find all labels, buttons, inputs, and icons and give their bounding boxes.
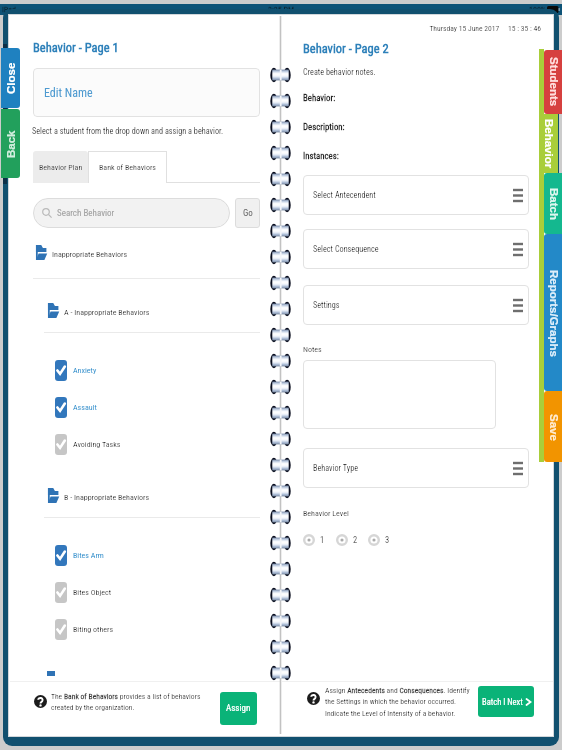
button[interactable]: Bank of Behaviors bbox=[88, 151, 167, 183]
staticText: Select a student from the drop down and … bbox=[32, 126, 224, 136]
staticText: Behavior Type bbox=[313, 463, 513, 473]
staticText: Notes bbox=[303, 345, 322, 354]
staticText: Behavior bbox=[542, 119, 555, 169]
staticText: Behavior - Page 1 bbox=[33, 40, 119, 55]
button[interactable]: Behavior Plan bbox=[33, 151, 88, 183]
staticText: Batch I Next bbox=[482, 697, 523, 707]
button[interactable]: 2 bbox=[336, 534, 358, 546]
staticText: 2 bbox=[353, 535, 358, 545]
staticText: 100% bbox=[529, 5, 546, 14]
button[interactable]: Go bbox=[235, 198, 260, 228]
staticText: Assault bbox=[73, 403, 97, 412]
staticText: Close bbox=[5, 62, 18, 94]
button[interactable]: Inappropriate Behaviors bbox=[35, 245, 128, 260]
button[interactable]: Edit Name bbox=[33, 68, 260, 117]
staticText: Bank of Behaviors bbox=[99, 163, 157, 172]
staticText: Behavior: bbox=[303, 93, 336, 103]
button[interactable]: 1 bbox=[303, 534, 325, 546]
staticText: 1 bbox=[320, 535, 325, 545]
staticText: B - Inappropriate Behaviors bbox=[64, 493, 150, 502]
button[interactable]: Bites Arm bbox=[55, 545, 104, 566]
button[interactable]: Select Antecendent bbox=[303, 175, 529, 215]
staticText: Back bbox=[5, 130, 18, 158]
button[interactable]: Batch bbox=[544, 173, 562, 234]
button[interactable]: Back bbox=[1, 109, 20, 178]
staticText: 3 bbox=[385, 535, 390, 545]
button[interactable]: Behavior Type bbox=[303, 448, 529, 488]
button[interactable]: Anxiety bbox=[55, 360, 97, 381]
button[interactable]: Students bbox=[544, 50, 562, 114]
staticText: Behavior Plan bbox=[39, 163, 83, 172]
button[interactable] bbox=[303, 360, 496, 429]
button[interactable]: Select Consequence bbox=[303, 229, 529, 269]
staticText: Assign Antecedents and Consequences. Ide… bbox=[325, 686, 473, 718]
button[interactable]: Bites Object bbox=[55, 582, 112, 603]
staticText: 3:35 PM bbox=[268, 5, 295, 14]
staticText: Batch bbox=[547, 188, 560, 220]
staticText: Assign bbox=[226, 703, 251, 714]
button[interactable]: Assign bbox=[220, 692, 257, 725]
staticText: Students bbox=[547, 57, 560, 107]
staticText: Create behavior notes. bbox=[303, 67, 376, 77]
button[interactable]: Assault bbox=[55, 397, 97, 418]
staticText: The Bank of Behaviors provides a list of… bbox=[51, 692, 211, 712]
staticText: Avoiding Tasks bbox=[73, 440, 121, 449]
staticText: Anxiety bbox=[73, 366, 97, 375]
staticText: Inappropriate Behaviors bbox=[52, 250, 128, 259]
staticText: Description: bbox=[303, 122, 345, 132]
staticText: Thursday 15 June 2017 15 : 35 : 46 bbox=[390, 24, 541, 33]
button[interactable]: A - Inappropriate Behaviors bbox=[47, 303, 150, 318]
staticText: iPad bbox=[2, 5, 17, 14]
button[interactable]: B - Inappropriate Behaviors bbox=[47, 488, 150, 503]
staticText: Bites Object bbox=[73, 588, 112, 597]
staticText: Behavior - Page 2 bbox=[303, 41, 389, 56]
button[interactable]: Biting others bbox=[55, 619, 114, 640]
staticText: Select Antecendent bbox=[313, 190, 513, 200]
button[interactable]: Settings bbox=[303, 285, 529, 325]
staticText: Settings bbox=[313, 300, 513, 310]
button[interactable]: Avoiding Tasks bbox=[55, 434, 121, 455]
staticText: Instances: bbox=[303, 151, 339, 161]
staticText: Reports/Graphs bbox=[547, 270, 560, 357]
staticText: Behavior Level bbox=[303, 509, 349, 518]
staticText: Select Consequence bbox=[313, 244, 513, 254]
staticText: Search Behavior bbox=[57, 208, 115, 219]
button[interactable]: Reports/Graphs bbox=[544, 234, 562, 391]
staticText: Biting others bbox=[73, 625, 114, 634]
button[interactable]: 3 bbox=[368, 534, 390, 546]
staticText: Edit Name bbox=[44, 86, 93, 100]
button[interactable]: Search Behavior bbox=[33, 198, 230, 228]
staticText: Go bbox=[243, 208, 253, 219]
staticText: Save bbox=[547, 414, 560, 441]
button[interactable]: Behavior bbox=[539, 114, 558, 173]
button[interactable]: Batch I Next bbox=[478, 686, 534, 717]
staticText: Bites Arm bbox=[73, 551, 104, 560]
staticText: A - Inappropriate Behaviors bbox=[64, 308, 150, 317]
button[interactable]: Close bbox=[1, 48, 20, 108]
button[interactable]: Save bbox=[544, 391, 562, 462]
